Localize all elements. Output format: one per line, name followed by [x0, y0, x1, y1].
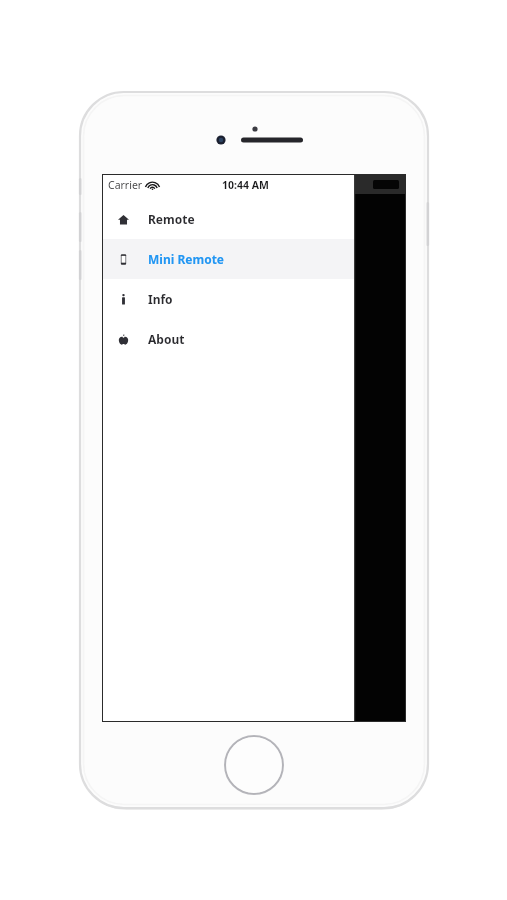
button[interactable]: About: [103, 319, 405, 359]
staticText: About: [148, 331, 185, 347]
staticText: Carrier: [108, 178, 143, 192]
staticText: Info: [148, 291, 173, 307]
button[interactable]: Remote: [103, 199, 405, 239]
staticText: Remote: [148, 211, 195, 227]
button[interactable]: Mini Remote: [103, 239, 405, 279]
staticText: Mini Remote: [148, 251, 225, 267]
staticText: 10:44 AM: [222, 178, 269, 192]
button[interactable]: Info: [103, 279, 405, 319]
